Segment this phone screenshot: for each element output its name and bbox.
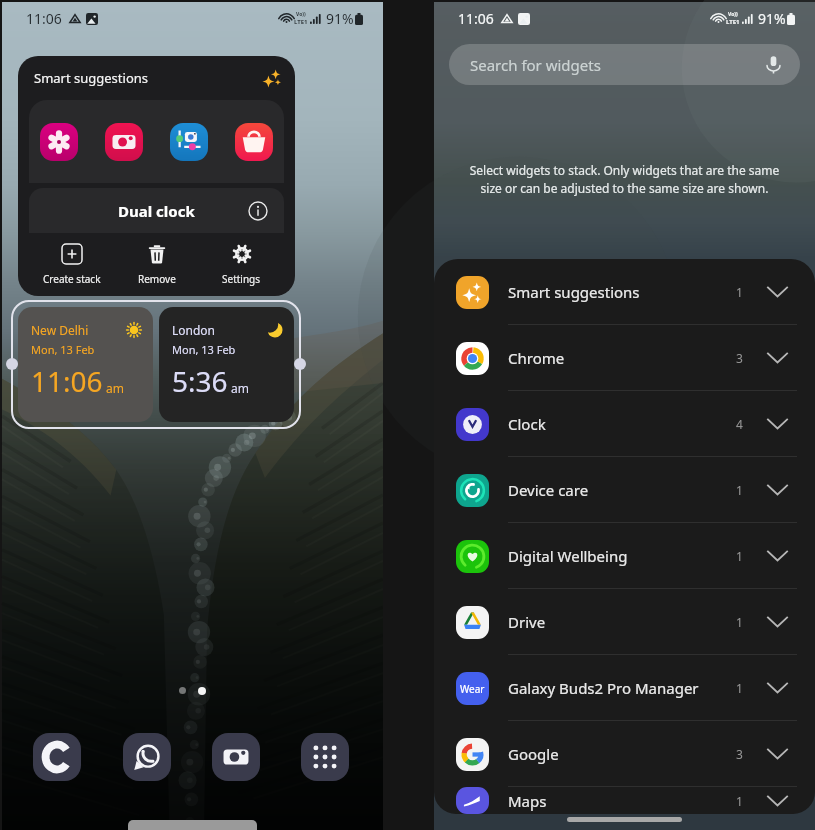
button[interactable]: Phone — [33, 733, 81, 781]
staticText: 11:06 — [458, 9, 494, 28]
staticText: Chrome — [508, 348, 565, 368]
button[interactable]: Camera — [105, 123, 143, 161]
staticText: 1 — [736, 482, 743, 498]
button[interactable]: Drive — [434, 589, 815, 655]
staticText: 1 — [736, 793, 743, 809]
staticText: 1 — [736, 284, 743, 300]
button[interactable]: Camera — [212, 733, 260, 781]
button[interactable]: Search for widgets — [449, 44, 800, 85]
button[interactable]: London — [159, 307, 294, 422]
button[interactable]: Shop — [235, 123, 273, 161]
staticText: 4 — [736, 416, 743, 432]
staticText: Clock — [508, 414, 546, 434]
staticText: 5:36 — [172, 362, 228, 400]
staticText: Vo)) — [296, 11, 306, 18]
staticText: LTE1 — [726, 18, 740, 26]
staticText: Smart suggestions — [34, 69, 149, 87]
button[interactable]: Photo editor — [170, 123, 208, 161]
button[interactable]: New Delhi — [18, 307, 153, 422]
button[interactable]: Apps — [301, 733, 349, 781]
staticText: Maps — [508, 791, 547, 811]
staticText: 3 — [736, 350, 743, 366]
button[interactable]: Clock — [434, 391, 815, 457]
staticText: 11:06 — [26, 9, 62, 28]
staticText: Create stack — [43, 272, 101, 286]
staticText: 1 — [736, 548, 743, 564]
button[interactable]: Digital Wellbeing — [434, 523, 815, 589]
button[interactable]: Device care — [434, 457, 815, 523]
staticText: am — [228, 380, 250, 396]
staticText: 91% — [326, 9, 354, 28]
staticText: Google — [508, 744, 559, 764]
staticText: Mon, 13 Feb — [172, 342, 236, 357]
staticText: 3 — [736, 746, 743, 762]
staticText: 1 — [736, 680, 743, 696]
staticText: Mon, 13 Feb — [31, 342, 95, 357]
button[interactable]: Smart suggestions — [434, 259, 815, 325]
staticText: Remove — [138, 272, 176, 286]
staticText: Wear — [460, 682, 485, 696]
button[interactable]: Create stack — [29, 233, 114, 296]
staticText: London — [172, 322, 216, 338]
button[interactable]: Gallery — [40, 123, 78, 161]
staticText: Digital Wellbeing — [508, 546, 628, 566]
button[interactable]: Google — [434, 721, 815, 787]
button[interactable]: Chrome — [434, 325, 815, 391]
staticText: 1 — [736, 614, 743, 630]
staticText: Vo)) — [728, 11, 738, 18]
staticText: Drive — [508, 612, 546, 632]
staticText: Dual clock — [118, 201, 195, 221]
staticText: am — [103, 380, 125, 396]
staticText: Select widgets to stack. Only widgets th… — [442, 162, 807, 197]
staticText: 11:06 — [31, 362, 103, 400]
button[interactable]: Remove — [114, 233, 199, 296]
button[interactable]: WhatsApp — [123, 733, 171, 781]
button[interactable]: Wear — [434, 655, 815, 721]
button[interactable]: Info — [248, 201, 268, 221]
staticText: LTE1 — [294, 18, 308, 26]
staticText: Galaxy Buds2 Pro Manager — [508, 678, 699, 698]
button[interactable]: Settings — [199, 233, 284, 296]
staticText: Search for widgets — [470, 55, 601, 75]
staticText: Device care — [508, 480, 589, 500]
button[interactable]: Maps — [434, 787, 815, 814]
staticText: Smart suggestions — [508, 282, 640, 302]
staticText: 91% — [758, 9, 786, 28]
staticText: New Delhi — [31, 322, 89, 338]
staticText: Settings — [222, 272, 261, 286]
